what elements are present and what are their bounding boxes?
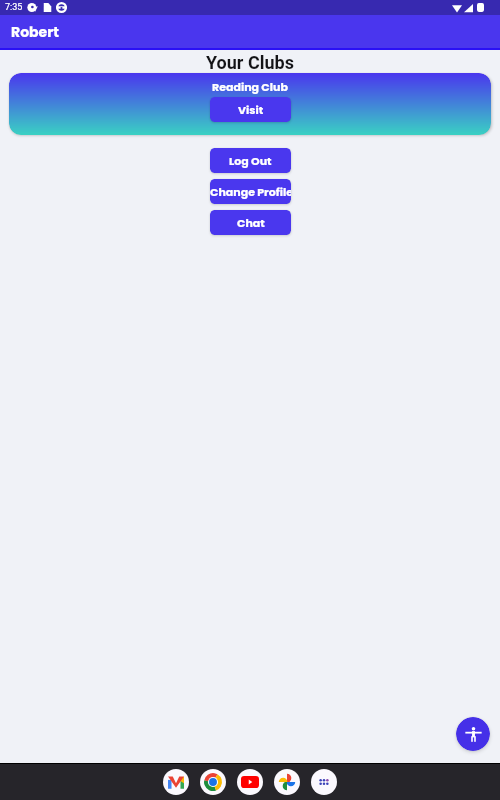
- button[interactable]: Chat: [210, 210, 291, 235]
- staticText: Robert: [11, 22, 59, 42]
- button[interactable]: All apps: [311, 769, 337, 795]
- staticText: Chat: [237, 215, 265, 230]
- button[interactable]: Log Out: [210, 148, 291, 173]
- staticText: Change Profile: [210, 184, 291, 199]
- button[interactable]: Photos: [274, 769, 300, 795]
- staticText: Log Out: [229, 153, 272, 168]
- button[interactable]: Visit: [210, 97, 291, 122]
- button[interactable]: Chrome: [200, 769, 226, 795]
- button[interactable]: Reading Club: [9, 73, 491, 135]
- button[interactable]: YouTube: [237, 769, 263, 795]
- staticText: Reading Club: [212, 79, 288, 94]
- staticText: 7:35: [5, 2, 23, 13]
- staticText: Your Clubs: [206, 52, 294, 70]
- staticText: Visit: [238, 102, 264, 117]
- button[interactable]: Gmail: [163, 769, 189, 795]
- button[interactable]: Accessibility menu: [456, 717, 490, 751]
- button[interactable]: Change Profile: [210, 179, 291, 204]
